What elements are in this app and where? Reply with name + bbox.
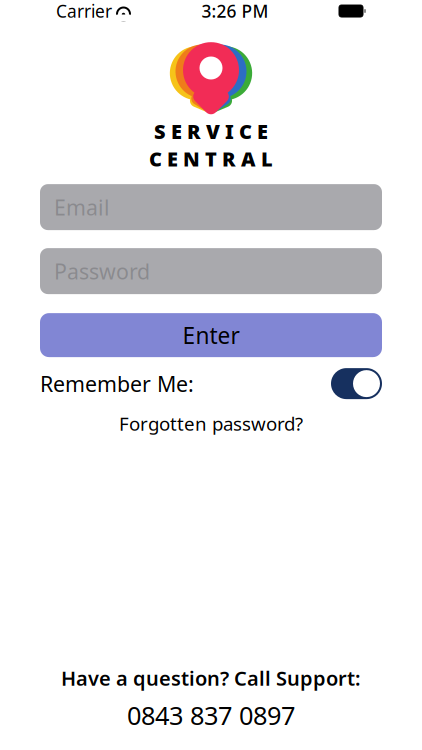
staticText: Have a question? Call Support:	[61, 665, 361, 691]
staticText: Password	[54, 257, 150, 285]
staticText: Email	[54, 193, 110, 221]
button[interactable]: Remember Me	[331, 368, 382, 399]
staticText: 3:26 PM	[201, 0, 268, 22]
staticText: Remember Me:	[40, 369, 194, 398]
staticText: S E R V I C E	[154, 118, 268, 145]
staticText: Forgotten password?	[119, 411, 303, 436]
staticText: Enter	[182, 320, 239, 350]
button[interactable]: Email	[40, 184, 382, 230]
staticText: Carrier	[56, 0, 112, 22]
staticText: 0843 837 0897	[127, 698, 295, 732]
button[interactable]: Enter	[40, 313, 382, 357]
button[interactable]: 0843 837 0897	[127, 698, 295, 732]
button[interactable]: Forgotten password?	[119, 411, 303, 436]
staticText: C E N T R A L	[149, 146, 273, 172]
button[interactable]: Password	[40, 248, 382, 294]
